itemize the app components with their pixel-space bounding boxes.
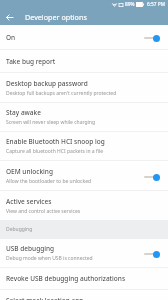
staticText: On — [6, 33, 16, 42]
button[interactable]: Desktop backup password — [0, 73, 168, 102]
staticText: USB debugging — [6, 244, 55, 253]
staticText: Debug mode when USB is connected — [6, 255, 93, 262]
button[interactable]: Take bug report — [0, 50, 168, 72]
staticText: 89% — [125, 1, 135, 8]
button[interactable]: On — [0, 25, 168, 49]
button[interactable]: Back — [3, 11, 16, 24]
staticText: Allow the bootloader to be unlocked — [6, 178, 92, 185]
staticText: Take bug report — [6, 57, 56, 66]
button[interactable]: Active services — [0, 191, 168, 220]
staticText: View and control active services — [6, 208, 81, 215]
staticText: 6:57 PM — [147, 1, 166, 8]
staticText: Capture all bluetooth HCI packets in a f… — [6, 148, 104, 155]
staticText: Select mock location app — [6, 296, 84, 300]
staticText: Debugging — [6, 226, 33, 233]
button[interactable]: Switch on — [141, 168, 165, 184]
button[interactable]: OEM unlocking — [0, 161, 168, 190]
button[interactable]: Switch on — [141, 29, 165, 45]
button[interactable]: Revoke USB debugging authorizations — [0, 268, 168, 289]
staticText: Revoke USB debugging authorizations — [6, 274, 126, 283]
staticText: OEM unlocking — [6, 167, 53, 176]
staticText: Enable Bluetooth HCI snoop log — [6, 137, 105, 146]
staticText: Active services — [6, 197, 52, 206]
staticText: Desktop backup password — [6, 79, 88, 88]
button[interactable]: Enable Bluetooth HCI snoop log — [0, 132, 168, 160]
staticText: Developer options — [25, 12, 87, 22]
button[interactable]: Stay awake — [0, 103, 168, 131]
staticText: Stay awake — [6, 108, 41, 117]
staticText: Desktop full backups aren't currently pr… — [6, 90, 117, 97]
button[interactable]: Switch on — [141, 245, 165, 261]
button[interactable]: USB debugging — [0, 239, 168, 267]
staticText: Screen will never sleep while charging — [6, 119, 96, 126]
